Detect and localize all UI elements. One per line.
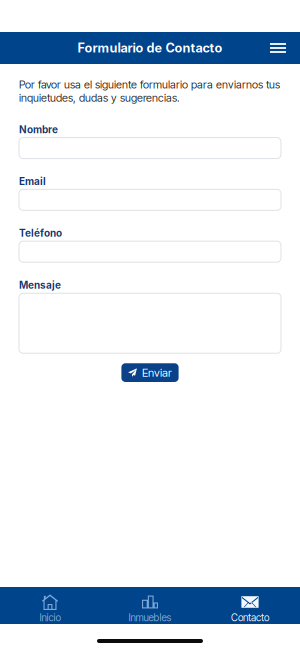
staticText: Mensaje (19, 279, 61, 291)
button[interactable]: Inmuebles (100, 587, 200, 624)
button[interactable]: Enviar (121, 363, 179, 382)
button[interactable]: Contacto (200, 587, 300, 624)
staticText: Nombre (19, 123, 58, 136)
staticText: Teléfono (19, 227, 62, 239)
staticText: Enviar (142, 366, 172, 379)
staticText: Formulario de Contacto (77, 40, 222, 56)
button[interactable]: Menu (260, 34, 300, 62)
staticText: Por favor usa el siguiente formulario pa… (19, 78, 280, 104)
staticText: Contacto (231, 611, 269, 624)
button[interactable]: Inicio (0, 587, 100, 624)
staticText: Inicio (39, 611, 60, 624)
staticText: Inmuebles (128, 611, 171, 624)
staticText: Email (19, 175, 46, 187)
